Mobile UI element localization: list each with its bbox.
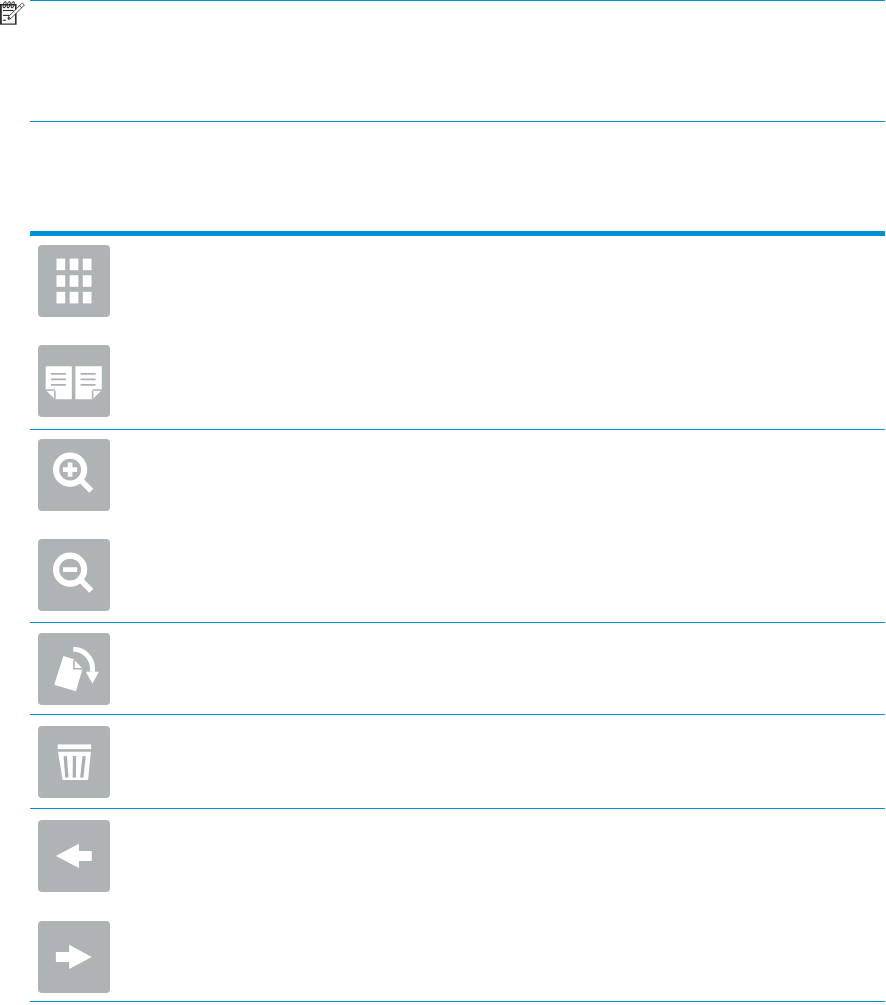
button[interactable]: Note (0, 0, 26, 26)
button[interactable]: Two page view (38, 345, 110, 417)
button[interactable]: Next page (38, 921, 110, 993)
button[interactable]: Zoom out (38, 539, 110, 611)
button[interactable]: Delete (38, 726, 110, 798)
button[interactable]: Zoom in (38, 439, 110, 511)
button[interactable]: Keypad (38, 245, 110, 317)
button[interactable]: Previous page (38, 820, 110, 892)
button[interactable]: Rotate page (38, 633, 110, 705)
